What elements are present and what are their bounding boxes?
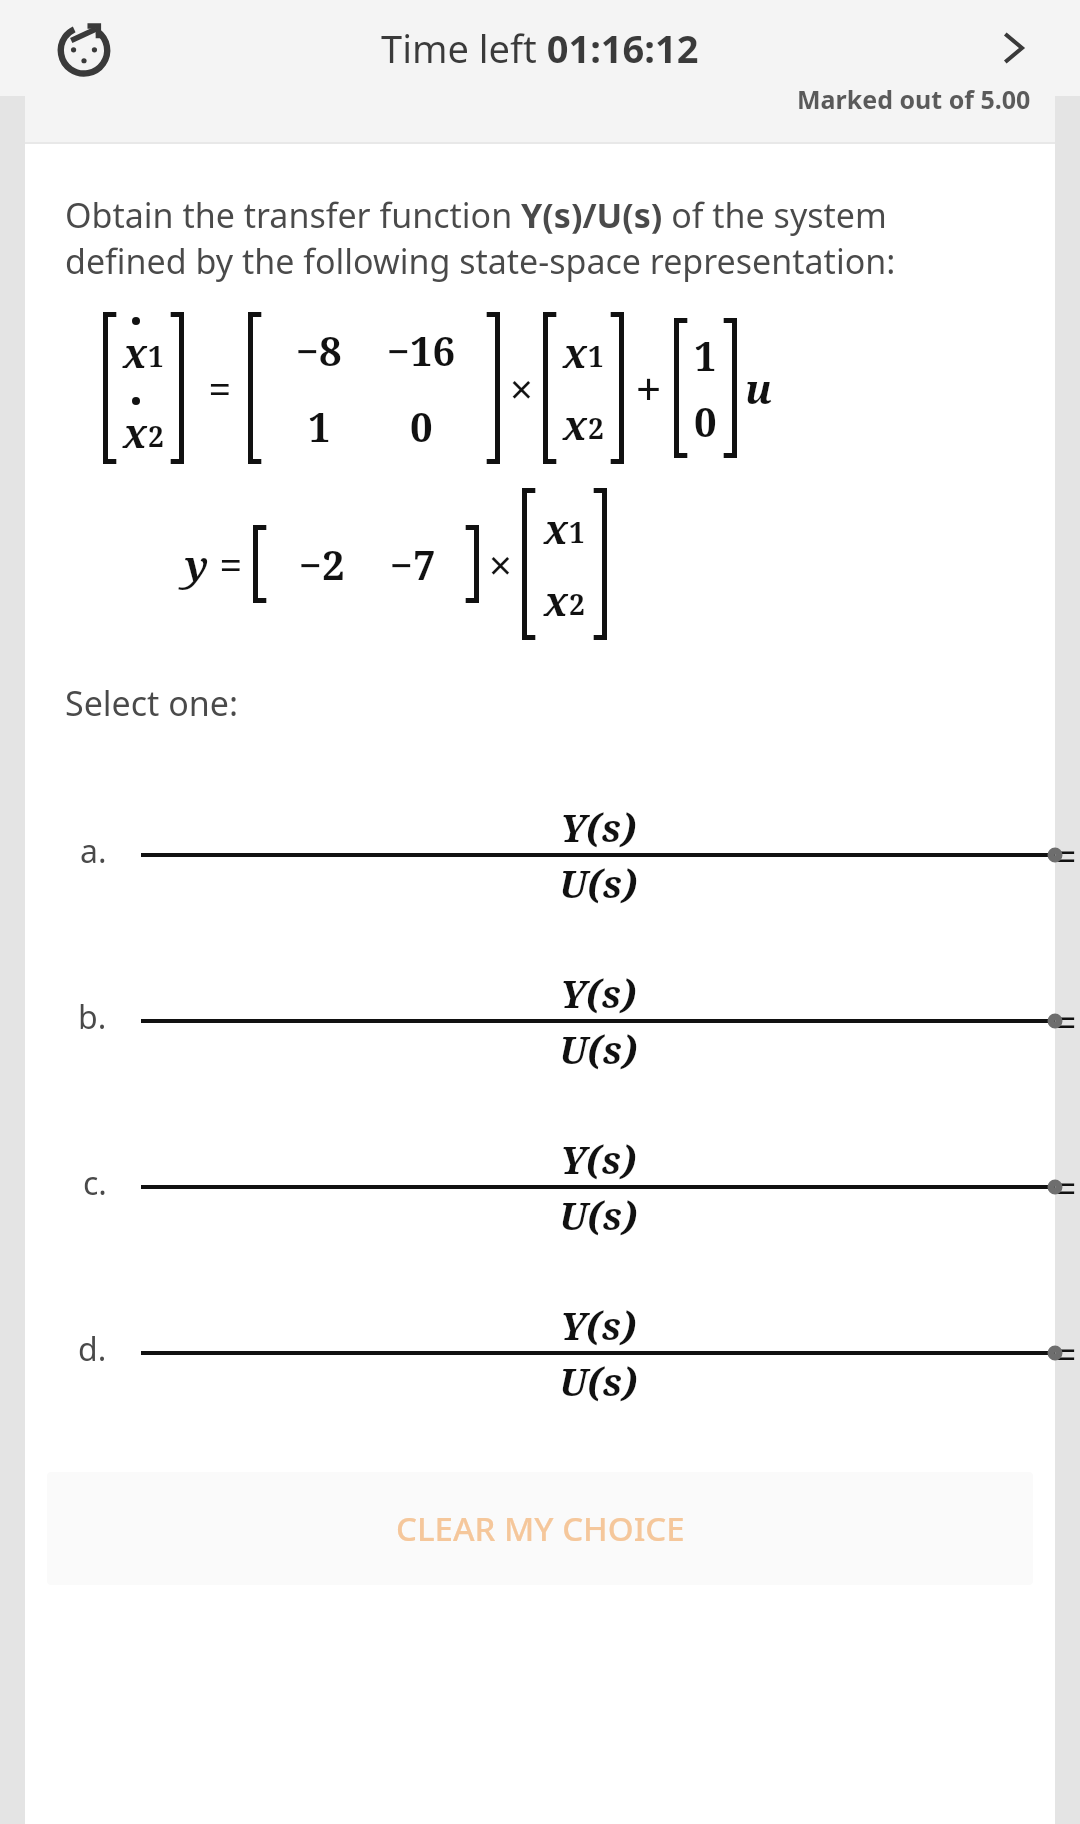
staticText: x xyxy=(123,325,148,379)
staticText: b. xyxy=(78,995,107,1039)
staticText: CLEAR MY CHOICE xyxy=(396,1506,685,1551)
staticText: 2 xyxy=(148,417,164,455)
staticText: 1 xyxy=(308,399,331,453)
staticText: 1 xyxy=(569,513,585,551)
staticText: x xyxy=(123,405,148,459)
button[interactable]: Next xyxy=(984,18,1044,78)
staticText: U(s) xyxy=(559,1023,638,1075)
staticText: = xyxy=(209,537,253,591)
staticText: d. xyxy=(78,1327,107,1371)
staticText: −16 xyxy=(387,323,456,377)
button[interactable]: d. xyxy=(25,1270,1055,1436)
staticText: × xyxy=(489,537,512,591)
button[interactable]: CLEAR MY CHOICE xyxy=(47,1472,1033,1585)
staticText: Y(s) xyxy=(560,801,637,853)
staticText: Y(s) xyxy=(560,1133,637,1185)
staticText: 1 xyxy=(588,337,604,375)
staticText: 0 xyxy=(694,394,717,448)
staticText: = xyxy=(198,361,242,415)
button[interactable]: c. xyxy=(25,1104,1055,1270)
staticText: x xyxy=(563,325,588,379)
button[interactable]: Timer xyxy=(52,16,116,80)
staticText: 2 xyxy=(569,585,585,623)
staticText: Time left 01:16:12 xyxy=(381,22,699,74)
staticText: u xyxy=(745,361,772,415)
staticText: U(s) xyxy=(559,857,638,909)
staticText: 2 xyxy=(588,409,604,447)
staticText: −7 xyxy=(390,537,436,591)
staticText: −2 xyxy=(299,537,345,591)
button[interactable]: b. xyxy=(25,938,1055,1104)
staticText: Y(s) xyxy=(560,1299,637,1351)
staticText: Y(s) xyxy=(560,967,637,1019)
staticText: x xyxy=(544,573,569,627)
staticText: y xyxy=(185,537,209,591)
staticText: Marked out of 5.00 xyxy=(797,82,1031,116)
staticText: 1 xyxy=(148,337,164,375)
staticText: a. xyxy=(80,829,107,873)
staticText: x xyxy=(544,501,569,555)
staticText: 1 xyxy=(694,328,717,382)
staticText: c. xyxy=(83,1161,107,1205)
staticText: + xyxy=(636,358,662,418)
staticText: U(s) xyxy=(559,1355,638,1407)
button[interactable]: a. xyxy=(25,772,1055,938)
staticText: Obtain the transfer function Y(s)/U(s) o… xyxy=(65,192,1015,284)
staticText: −8 xyxy=(296,323,342,377)
staticText: × xyxy=(510,361,533,415)
staticText: Select one: xyxy=(65,680,239,726)
staticText: 0 xyxy=(410,399,433,453)
staticText: x xyxy=(563,397,588,451)
staticText: U(s) xyxy=(559,1189,638,1241)
